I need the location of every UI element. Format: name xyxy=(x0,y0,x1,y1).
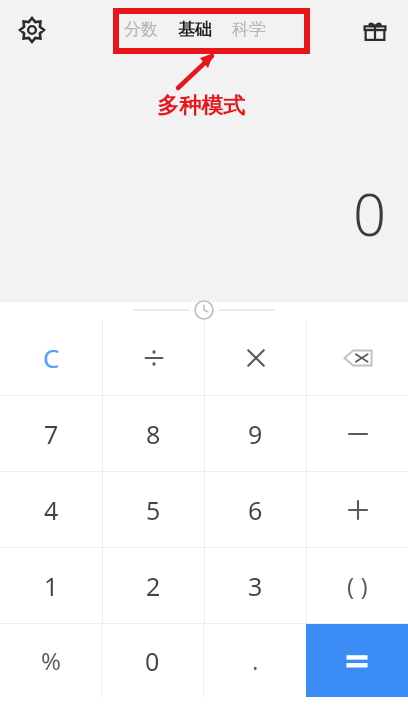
button[interactable]: % xyxy=(0,624,101,697)
button[interactable]: 分数 xyxy=(124,19,158,40)
staticText: 4 xyxy=(44,493,59,527)
staticText: 1 xyxy=(44,569,59,603)
button[interactable]: 3 xyxy=(205,548,306,623)
staticText: . xyxy=(252,644,259,677)
staticText: 基础 xyxy=(178,19,212,40)
staticText: 5 xyxy=(146,493,161,527)
button[interactable] xyxy=(307,396,408,471)
staticText: 分数 xyxy=(124,19,158,40)
staticText: 多种模式 xyxy=(157,92,245,120)
button[interactable]: 2 xyxy=(103,548,204,623)
button[interactable] xyxy=(307,472,408,547)
button[interactable]: C xyxy=(0,320,102,395)
button[interactable]: Settings xyxy=(18,16,46,44)
button[interactable]: Equals xyxy=(306,624,408,697)
staticText: 科学 xyxy=(232,19,266,40)
staticText: 9 xyxy=(248,417,263,451)
button[interactable]: 0 xyxy=(102,624,203,697)
button[interactable] xyxy=(205,320,306,395)
staticText: 0 xyxy=(145,644,160,678)
staticText: 2 xyxy=(146,569,161,603)
button[interactable] xyxy=(103,320,204,395)
button[interactable]: 8 xyxy=(103,396,204,471)
staticText: 7 xyxy=(44,417,59,451)
button[interactable]: 9 xyxy=(205,396,306,471)
staticText: 0 xyxy=(352,174,386,253)
button[interactable]: 6 xyxy=(205,472,306,547)
staticText: ( ) xyxy=(347,569,368,602)
staticText: 8 xyxy=(146,417,161,451)
staticText: 3 xyxy=(248,569,263,603)
staticText: % xyxy=(41,644,61,677)
button[interactable] xyxy=(307,320,408,395)
button[interactable]: History xyxy=(0,302,408,322)
button[interactable]: ( ) xyxy=(307,548,408,623)
button[interactable]: 7 xyxy=(0,396,102,471)
staticText: C xyxy=(43,340,60,375)
button[interactable]: 1 xyxy=(0,548,102,623)
button[interactable]: 科学 xyxy=(232,19,266,40)
button[interactable]: Gift xyxy=(360,15,390,45)
button[interactable]: 5 xyxy=(103,472,204,547)
staticText: 6 xyxy=(248,493,263,527)
button[interactable]: 4 xyxy=(0,472,102,547)
button[interactable]: . xyxy=(204,624,306,697)
button[interactable]: 基础 xyxy=(178,19,212,40)
